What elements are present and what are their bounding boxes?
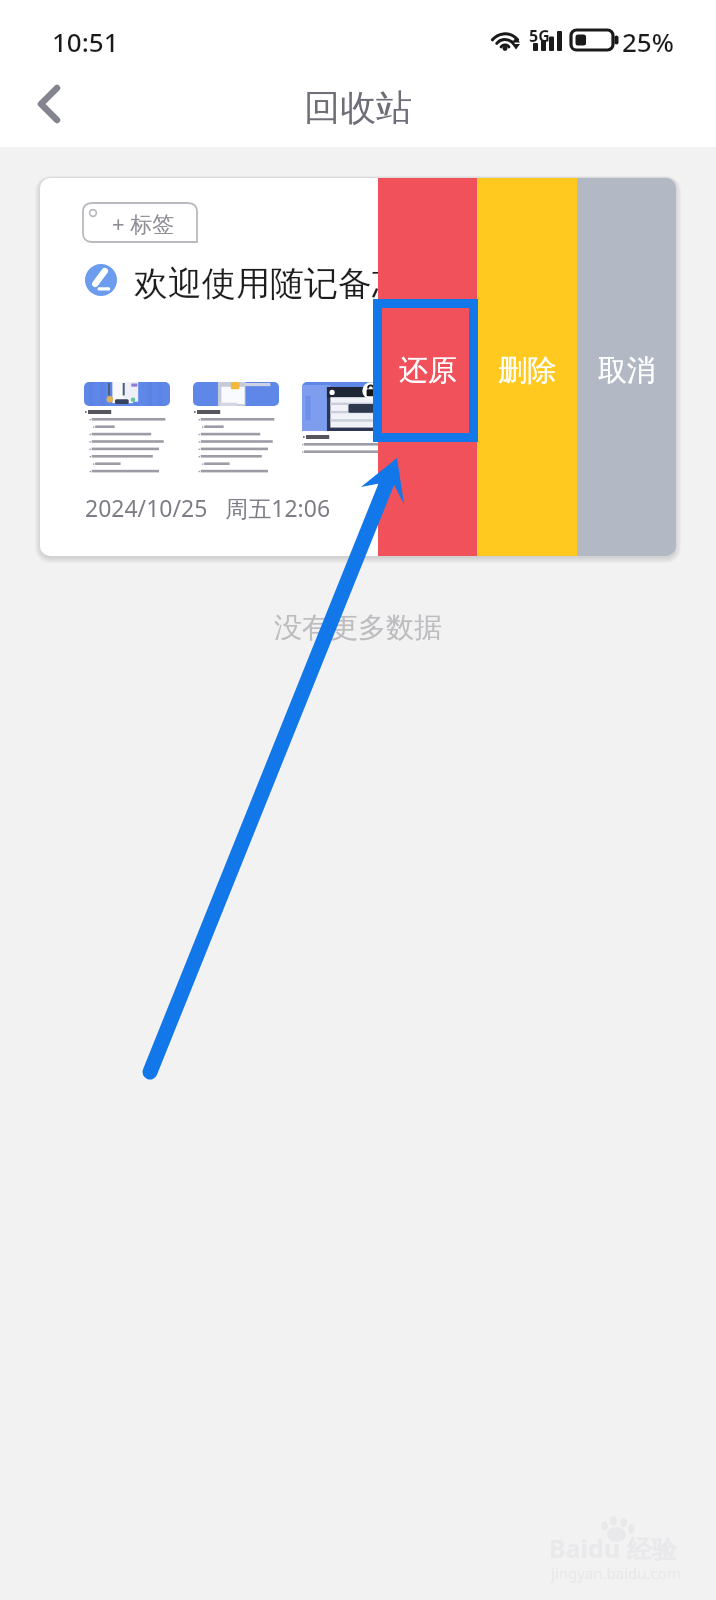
button[interactable]: Back <box>13 68 85 140</box>
staticText: 还原 <box>399 352 457 389</box>
staticText: 删除 <box>498 352 556 389</box>
staticText: 没有更多数据 <box>274 610 442 645</box>
button[interactable] <box>193 382 279 474</box>
staticText: 2024/10/25 周五12:06 <box>85 492 331 523</box>
staticText: Baidu 经验 <box>549 1531 677 1565</box>
button[interactable] <box>84 382 170 474</box>
button[interactable]: 删除 <box>477 178 577 556</box>
staticText: 5G <box>529 25 550 47</box>
button[interactable] <box>302 382 388 474</box>
staticText: + 标签 <box>112 208 175 238</box>
staticText: 回收站 <box>304 85 412 130</box>
staticText: 取消 <box>598 352 656 389</box>
button[interactable]: 还原 <box>378 178 477 556</box>
button[interactable]: + 标签 <box>83 203 197 242</box>
staticText: 欢迎使用随记备忘录 <box>134 262 440 305</box>
staticText: jingyan.baidu.com <box>551 1563 681 1583</box>
button[interactable]: 取消 <box>577 178 676 556</box>
staticText: 25% <box>622 24 674 59</box>
staticText: 10:51 <box>52 24 119 59</box>
